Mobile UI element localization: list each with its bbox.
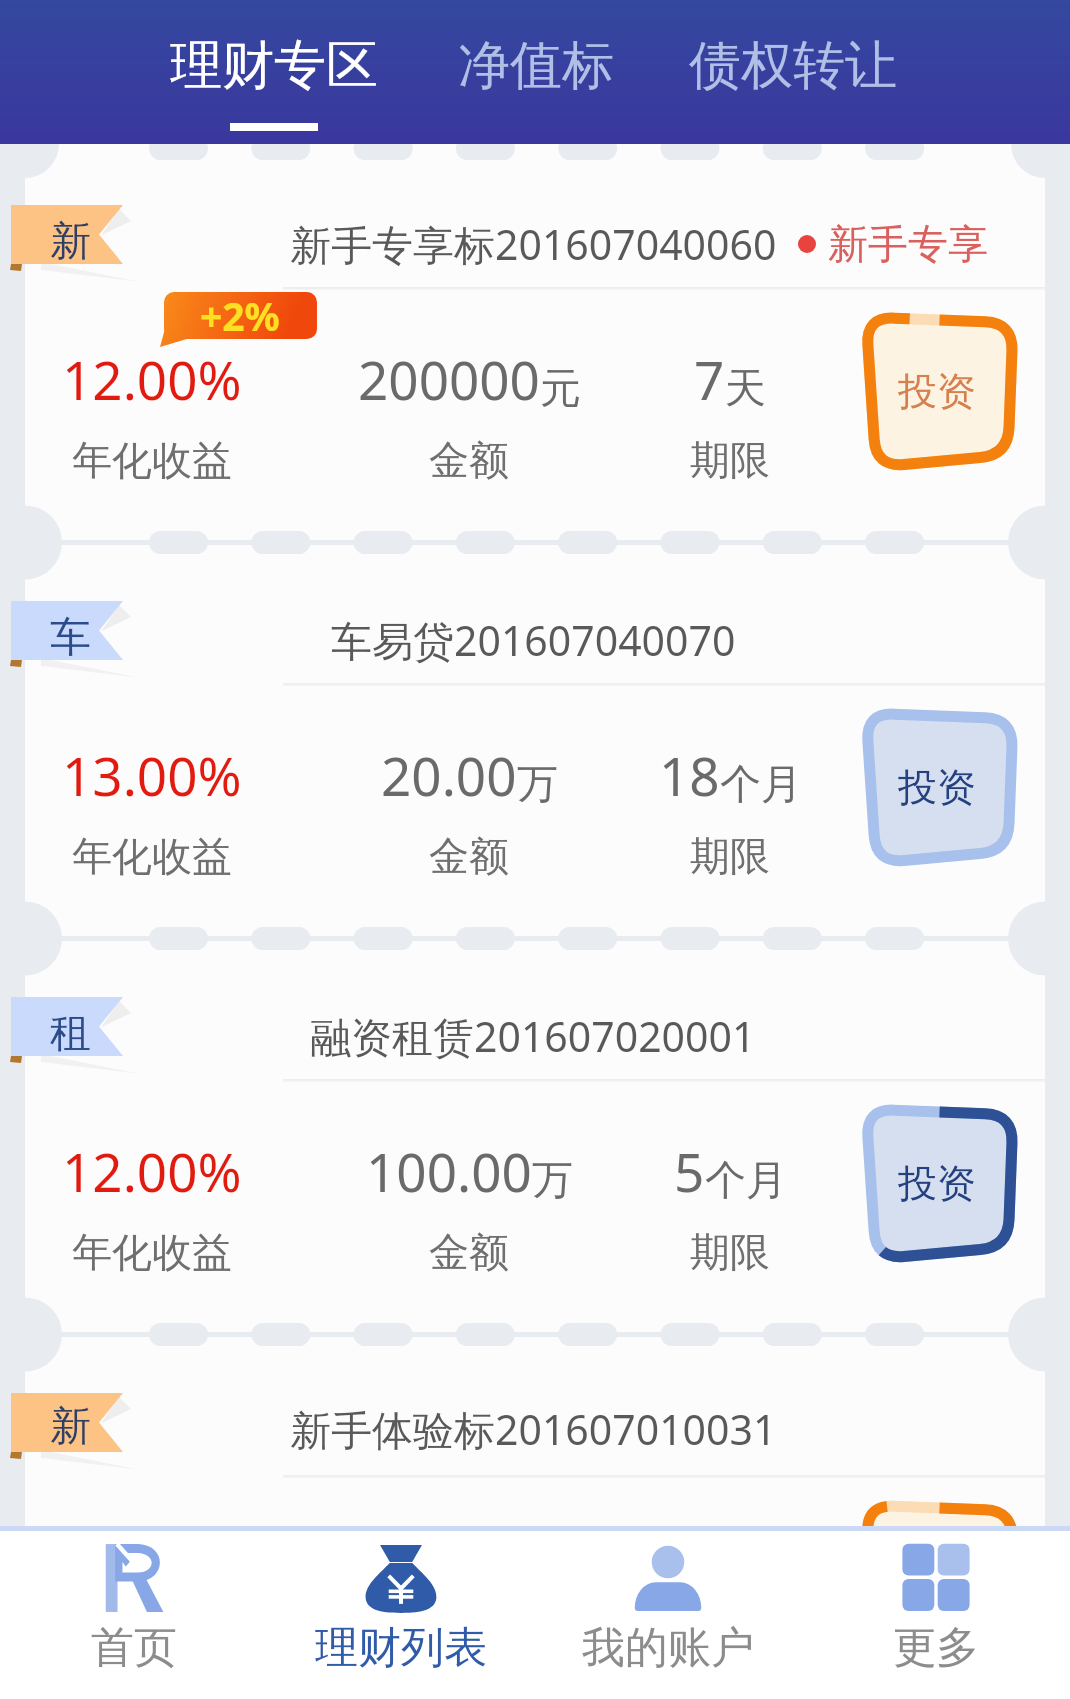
staticText: 年化收益 — [72, 1227, 232, 1277]
button[interactable]: 车 — [0, 540, 1070, 936]
staticText: 投资 — [898, 367, 976, 416]
staticText: 7 — [694, 343, 725, 415]
staticText: 租 — [50, 1008, 91, 1060]
staticText: 12.00% — [62, 1135, 242, 1207]
staticText: 万 — [517, 759, 558, 811]
staticText: 新手专享 — [828, 219, 988, 269]
button[interactable]: 净值标 — [386, 0, 686, 144]
staticText: 更多 — [893, 1621, 979, 1675]
button[interactable]: 租 — [0, 936, 1070, 1332]
staticText: 13.00% — [62, 739, 242, 811]
staticText: 期限 — [690, 435, 770, 485]
staticText: 5 — [674, 1135, 705, 1207]
staticText: 年化收益 — [72, 435, 232, 485]
staticText: 200000 — [358, 343, 540, 415]
button[interactable]: 新 — [0, 1332, 1070, 1526]
staticText: 首页 — [91, 1621, 177, 1675]
staticText: 万 — [532, 1155, 573, 1207]
staticText: 车 — [50, 612, 91, 664]
button[interactable]: 我的账户 — [534, 1531, 802, 1675]
button[interactable]: 理财专区 — [124, 0, 424, 144]
button[interactable]: 理财列表 — [267, 1531, 534, 1675]
staticText: 期限 — [690, 1227, 770, 1277]
staticText: 金额 — [429, 831, 509, 881]
staticText: 新 — [50, 1401, 91, 1453]
staticText: 理财专区 — [170, 33, 378, 99]
staticText: 元 — [540, 363, 581, 415]
staticText: 天 — [725, 363, 766, 415]
staticText: 新手体验标201607010031 — [290, 1401, 777, 1457]
staticText: 投资 — [898, 1159, 976, 1208]
staticText: 融资租赁201607020001 — [310, 1008, 756, 1064]
button[interactable]: 更多 — [802, 1531, 1070, 1675]
staticText: 金额 — [429, 1227, 509, 1277]
button[interactable]: 首页 — [0, 1531, 267, 1675]
button[interactable]: 债权转让 — [643, 0, 943, 144]
staticText: 20.00 — [381, 739, 517, 811]
staticText: 18 — [659, 739, 720, 811]
staticText: 我的账户 — [582, 1621, 754, 1675]
staticText: 投资 — [898, 763, 976, 812]
staticText: 个月 — [720, 759, 802, 811]
staticText: 债权转让 — [689, 33, 897, 99]
staticText: 100.00 — [366, 1135, 532, 1207]
staticText: 净值标 — [458, 33, 614, 99]
staticText: 新手专享标201607040060 — [290, 216, 777, 272]
staticText: 车易贷201607040070 — [331, 612, 736, 668]
staticText: 期限 — [690, 831, 770, 881]
button[interactable]: 新 — [0, 144, 1070, 540]
staticText: 理财列表 — [315, 1621, 487, 1675]
staticText: 个月 — [705, 1155, 787, 1207]
staticText: +2% — [200, 289, 280, 342]
staticText: 新 — [50, 216, 91, 268]
staticText: 12.00% — [62, 343, 242, 415]
staticText: 年化收益 — [72, 831, 232, 881]
staticText: 金额 — [429, 435, 509, 485]
